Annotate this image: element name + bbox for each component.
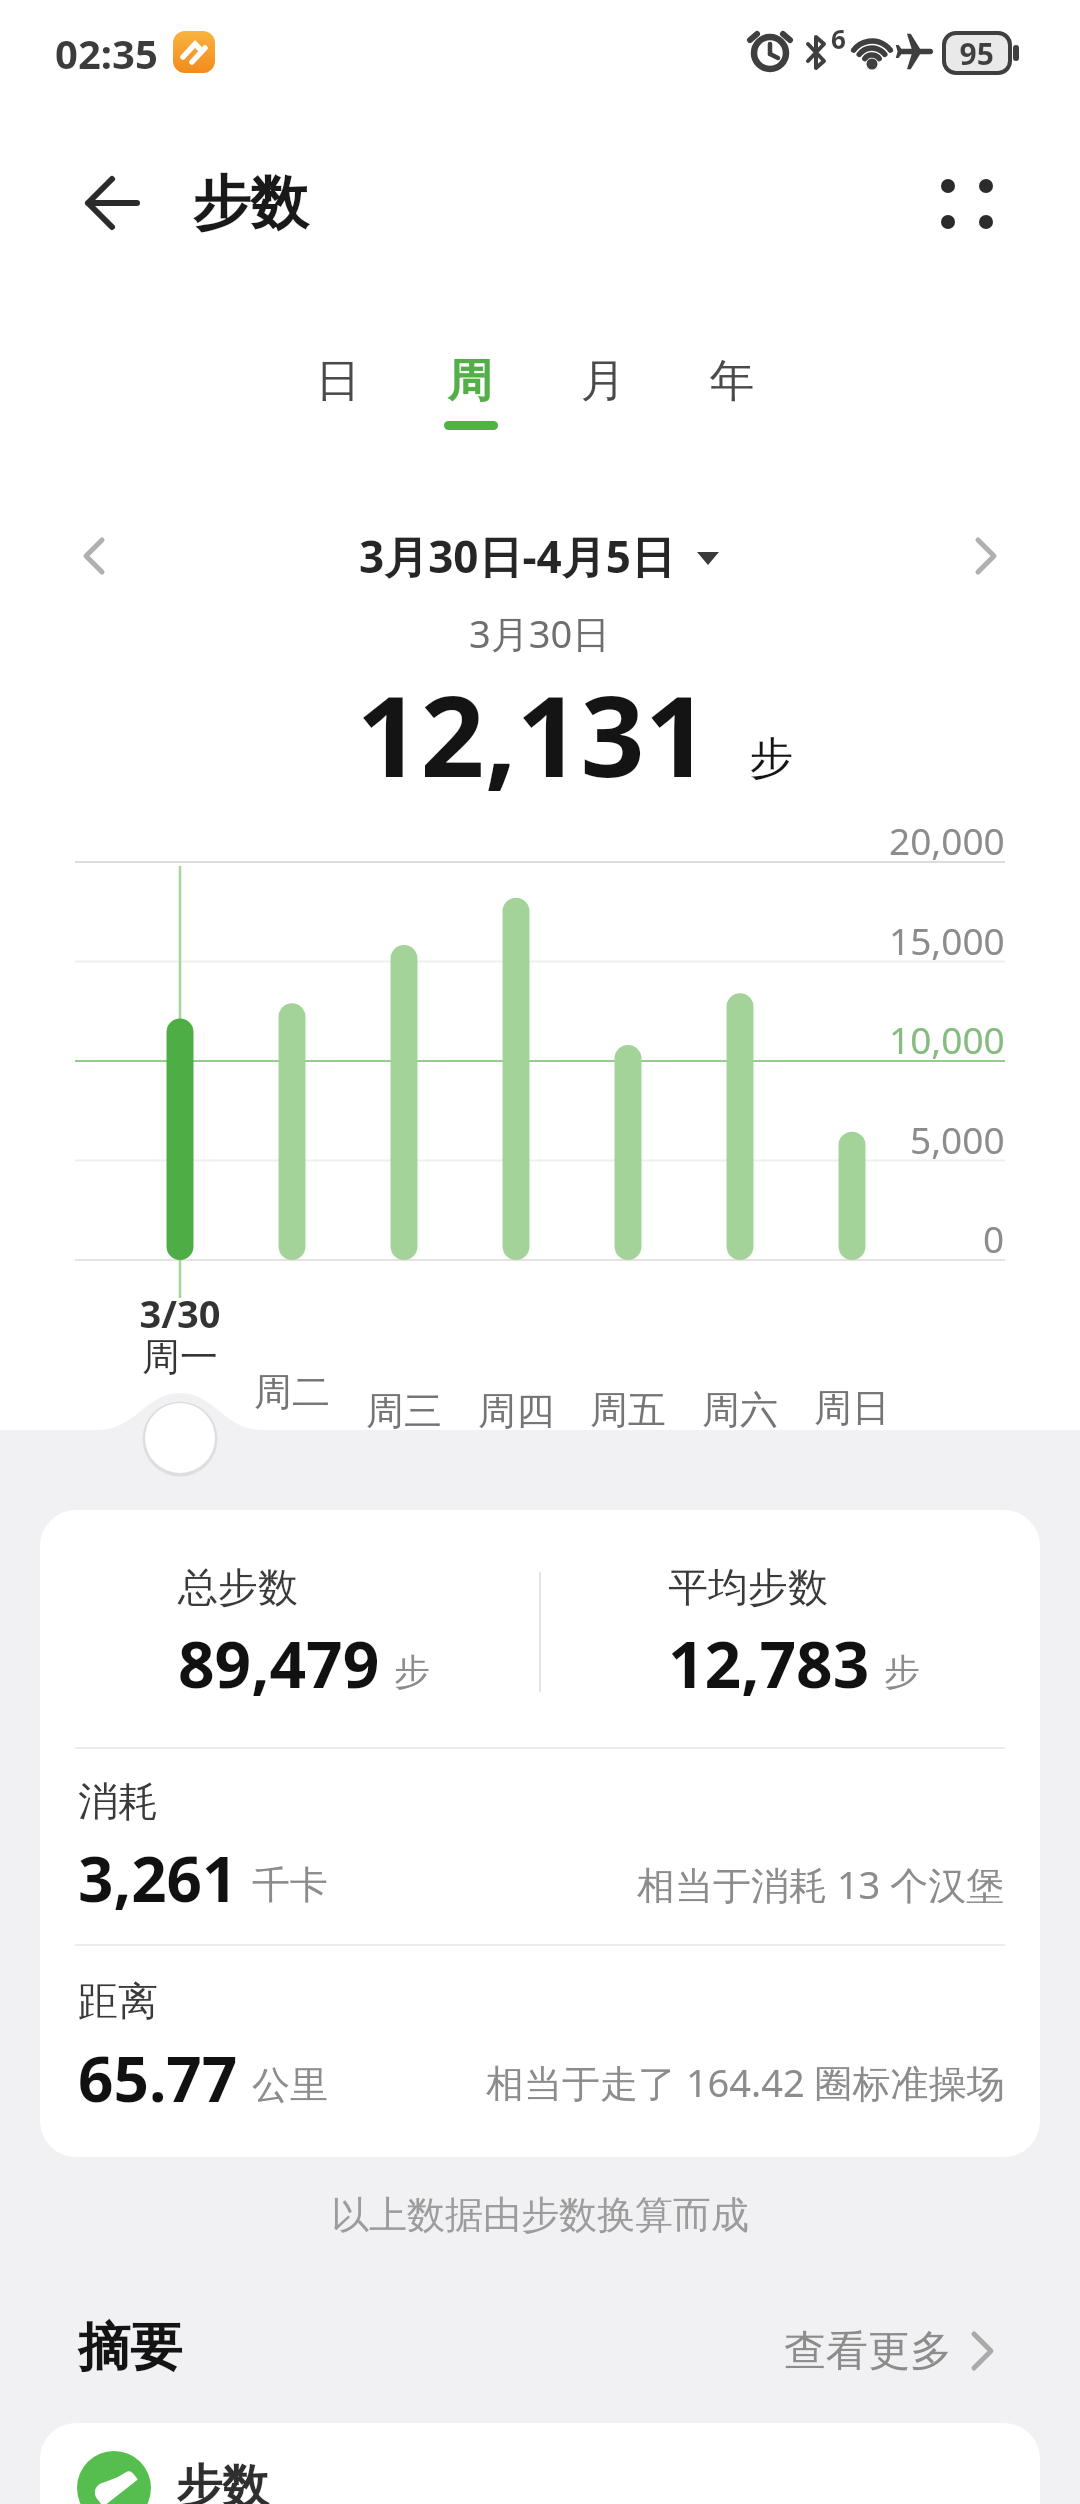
button[interactable] bbox=[915, 160, 1015, 250]
button[interactable] bbox=[553, 340, 653, 435]
button[interactable] bbox=[340, 516, 740, 596]
button[interactable] bbox=[60, 160, 160, 250]
button[interactable] bbox=[682, 340, 782, 435]
button[interactable] bbox=[420, 340, 520, 435]
button[interactable] bbox=[288, 340, 388, 435]
button[interactable] bbox=[40, 2423, 1040, 2504]
button[interactable] bbox=[750, 2310, 1020, 2392]
button[interactable] bbox=[940, 516, 1030, 596]
button[interactable] bbox=[50, 516, 140, 596]
